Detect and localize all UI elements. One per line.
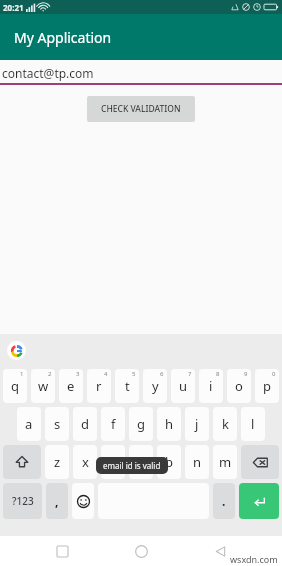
staticText: d	[81, 415, 89, 433]
staticText: g	[137, 415, 145, 433]
button[interactable]: t	[115, 369, 139, 403]
staticText: x	[82, 453, 89, 471]
button[interactable]: m	[213, 445, 237, 479]
staticText: 2	[48, 370, 52, 378]
staticText: p	[263, 377, 271, 395]
button[interactable]: CHECK VALIDATION	[87, 96, 195, 122]
staticText: 9	[244, 370, 248, 378]
staticText: CHECK VALIDATION	[101, 103, 181, 115]
staticText: v	[138, 453, 145, 471]
staticText: b	[165, 453, 173, 471]
staticText: o	[235, 377, 243, 395]
button[interactable]: Back	[203, 536, 237, 566]
button[interactable]: s	[45, 407, 69, 441]
staticText: i	[209, 377, 213, 395]
staticText: t	[125, 377, 130, 395]
button[interactable]: c	[101, 445, 125, 479]
staticText: u	[179, 377, 188, 395]
button[interactable]: v	[129, 445, 153, 479]
staticText: l	[251, 415, 255, 433]
button[interactable]: o	[227, 369, 251, 403]
button[interactable]: r	[87, 369, 111, 403]
staticText: ?123	[12, 494, 34, 508]
staticText: contact@tp.com	[2, 65, 94, 81]
button[interactable]: Google	[7, 341, 26, 360]
button[interactable]: q	[3, 369, 27, 403]
staticText: e	[67, 377, 75, 395]
button[interactable]: j	[185, 407, 209, 441]
button[interactable]: Emoji	[72, 483, 94, 519]
button[interactable]: h	[157, 407, 181, 441]
staticText: s	[54, 415, 61, 433]
staticText: 6	[160, 370, 164, 378]
staticText: 4	[104, 370, 108, 378]
button[interactable]: i	[199, 369, 223, 403]
button[interactable]: p	[255, 369, 279, 403]
button[interactable]: Recents	[45, 536, 79, 566]
staticText: w	[38, 377, 49, 395]
button[interactable]: Shift	[3, 445, 41, 479]
button[interactable]: contact@tp.com	[0, 63, 282, 85]
staticText: 7	[188, 370, 192, 378]
button[interactable]: d	[73, 407, 97, 441]
staticText: ,	[55, 493, 59, 509]
staticText: k	[222, 415, 229, 433]
button[interactable]: n	[185, 445, 209, 479]
button[interactable]: b	[157, 445, 181, 479]
button[interactable]: k	[213, 407, 237, 441]
staticText: q	[11, 377, 19, 395]
staticText: 5	[132, 370, 136, 378]
button[interactable]: Home	[124, 536, 158, 566]
staticText: n	[193, 453, 202, 471]
staticText: f	[111, 415, 116, 433]
staticText: r	[96, 377, 102, 395]
button[interactable]: a	[17, 407, 41, 441]
button[interactable]: g	[129, 407, 153, 441]
button[interactable]: .	[213, 483, 235, 519]
staticText: c	[110, 453, 117, 471]
button[interactable]: ?123	[3, 483, 42, 519]
staticText: email id is valid	[103, 460, 161, 471]
button[interactable]: Backspace	[241, 445, 279, 479]
button[interactable]: z	[45, 445, 69, 479]
button[interactable]: u	[171, 369, 195, 403]
button[interactable]: f	[101, 407, 125, 441]
staticText: My Application	[14, 28, 112, 47]
button[interactable]: Enter	[239, 483, 279, 519]
button[interactable]: ,	[46, 483, 68, 519]
staticText: y	[152, 377, 159, 395]
staticText: 1	[20, 370, 24, 378]
staticText: j	[195, 415, 199, 433]
staticText: .	[222, 493, 226, 509]
button[interactable]: w	[31, 369, 55, 403]
staticText: 20:21	[3, 2, 24, 13]
staticText: h	[165, 415, 174, 433]
staticText: z	[54, 453, 61, 471]
button[interactable]: l	[241, 407, 265, 441]
staticText: 8	[216, 370, 220, 378]
staticText: a	[25, 415, 33, 433]
button[interactable]: x	[73, 445, 97, 479]
button[interactable]: y	[143, 369, 167, 403]
staticText: 3	[76, 370, 80, 378]
staticText: wsxdn.com	[230, 553, 278, 565]
button[interactable]: e	[59, 369, 83, 403]
staticText: 0	[272, 370, 276, 378]
staticText: m	[219, 453, 232, 471]
